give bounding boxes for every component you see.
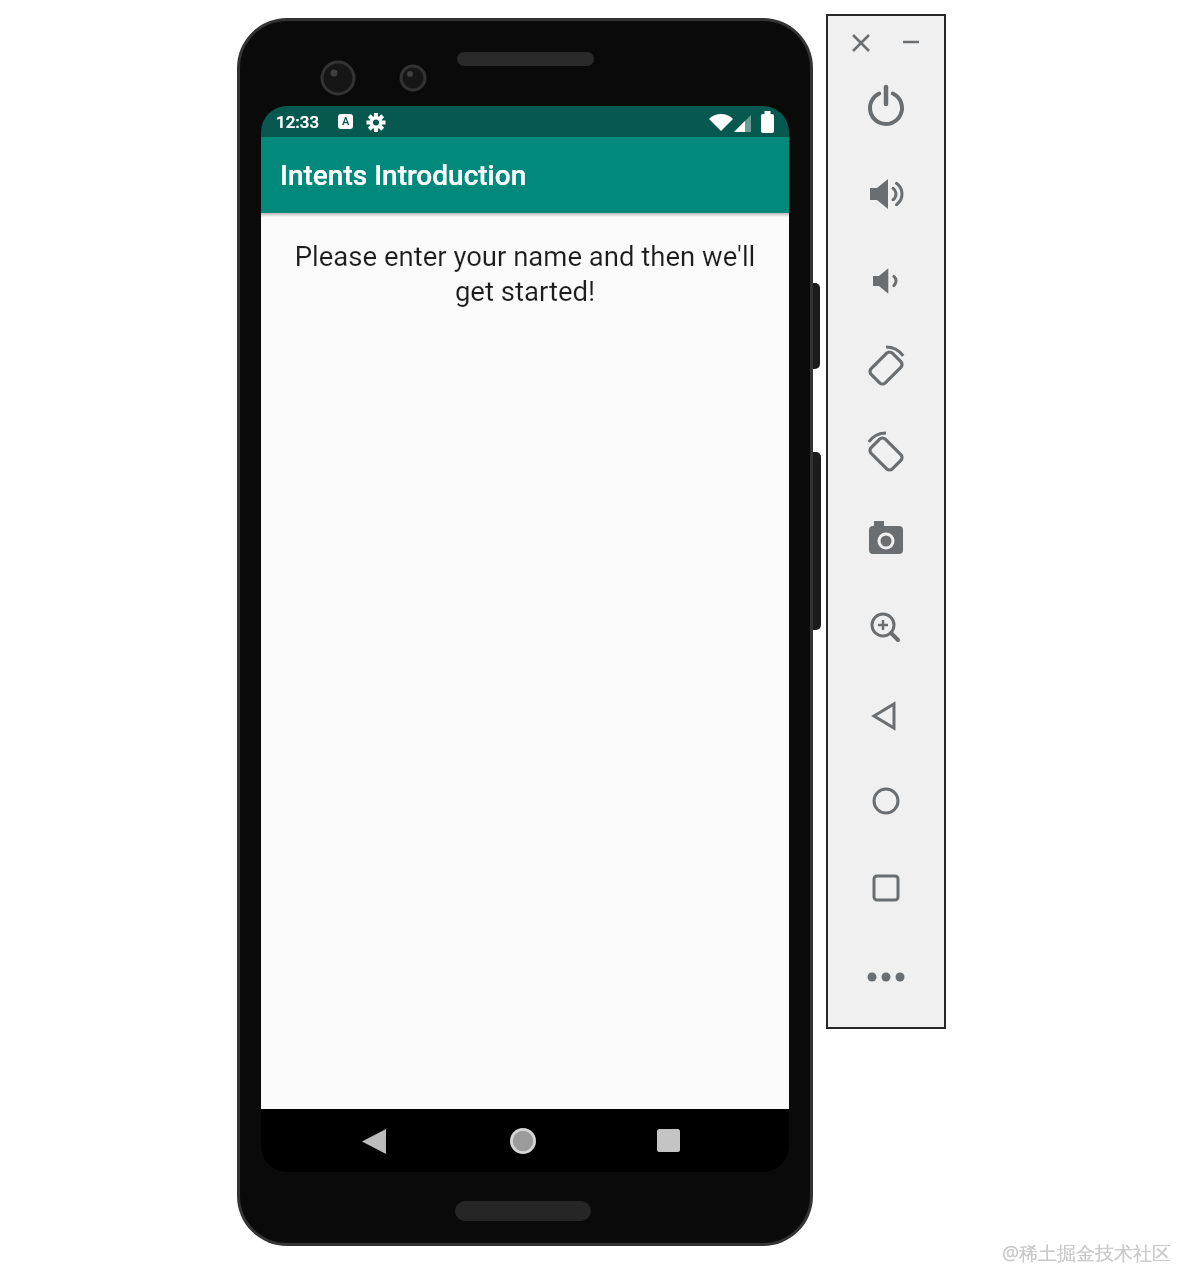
button[interactable]: [499, 1117, 547, 1165]
button[interactable]: [862, 344, 910, 392]
button[interactable]: [338, 1117, 386, 1165]
button[interactable]: [849, 31, 873, 55]
button[interactable]: [862, 430, 910, 478]
button[interactable]: [645, 1117, 693, 1165]
staticText: A: [342, 115, 350, 128]
staticText: Intents Introduction: [280, 159, 527, 192]
button[interactable]: Intents Introduction: [261, 137, 789, 213]
button[interactable]: [862, 953, 910, 1001]
staticText: Please enter your name and then we'll ge…: [261, 240, 789, 308]
button[interactable]: [862, 516, 910, 564]
button[interactable]: [862, 170, 910, 218]
staticText: 12:33: [276, 112, 320, 132]
button[interactable]: [899, 30, 923, 54]
staticText: @稀土掘金技术社区: [1002, 1240, 1172, 1266]
button[interactable]: [862, 604, 910, 652]
button[interactable]: [862, 692, 910, 740]
button[interactable]: [862, 84, 910, 132]
button[interactable]: [862, 864, 910, 912]
button[interactable]: [862, 777, 910, 825]
button[interactable]: [862, 257, 910, 305]
